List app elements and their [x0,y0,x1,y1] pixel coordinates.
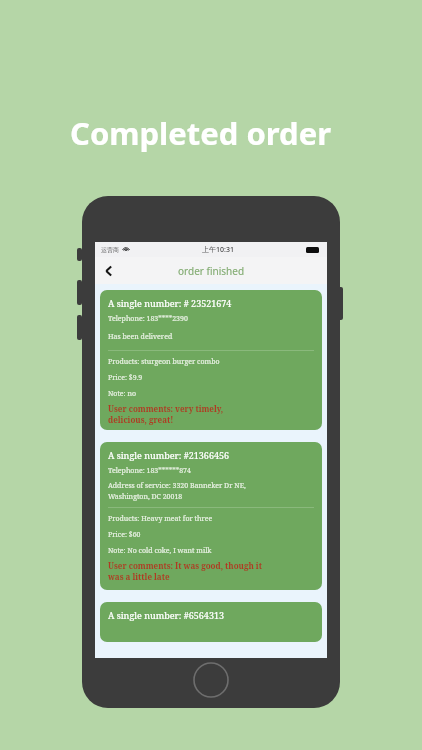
staticText: User comments: It was good, though it wa… [108,560,262,582]
staticText: order finished [178,264,245,278]
staticText: Products: Heavy meat for three [108,514,213,524]
staticText: 上午10:31 [202,245,234,255]
staticText: Telephone: 183******874 [108,466,191,476]
staticText: Price: $60 [108,530,141,540]
staticText: 运营商 [101,246,119,254]
staticText: A single number: #6564313 [108,609,224,621]
staticText: Products: sturgeon burger combo [108,357,220,367]
staticText: Completed order [70,112,332,154]
staticText: Telephone: 183****2390 [108,314,188,324]
staticText: A single number: #21366456 [108,449,230,461]
button[interactable]: A single number: #21366456 [100,442,322,590]
staticText: User comments: very timely, delicious, g… [108,403,223,425]
staticText: Price: $9.9 [108,373,143,383]
staticText: Address of service: 3320 Banneker Dr NE,… [108,481,246,501]
staticText: Note: no [108,389,136,399]
staticText: A single number: # 23521674 [108,297,232,309]
button[interactable]: A single number: # 23521674 [100,290,322,430]
button[interactable]: A single number: #6564313 [100,602,322,642]
staticText: Has been delivered [108,332,173,342]
button[interactable]: Back [95,257,122,284]
staticText: Note: No cold coke, I want milk [108,546,212,556]
